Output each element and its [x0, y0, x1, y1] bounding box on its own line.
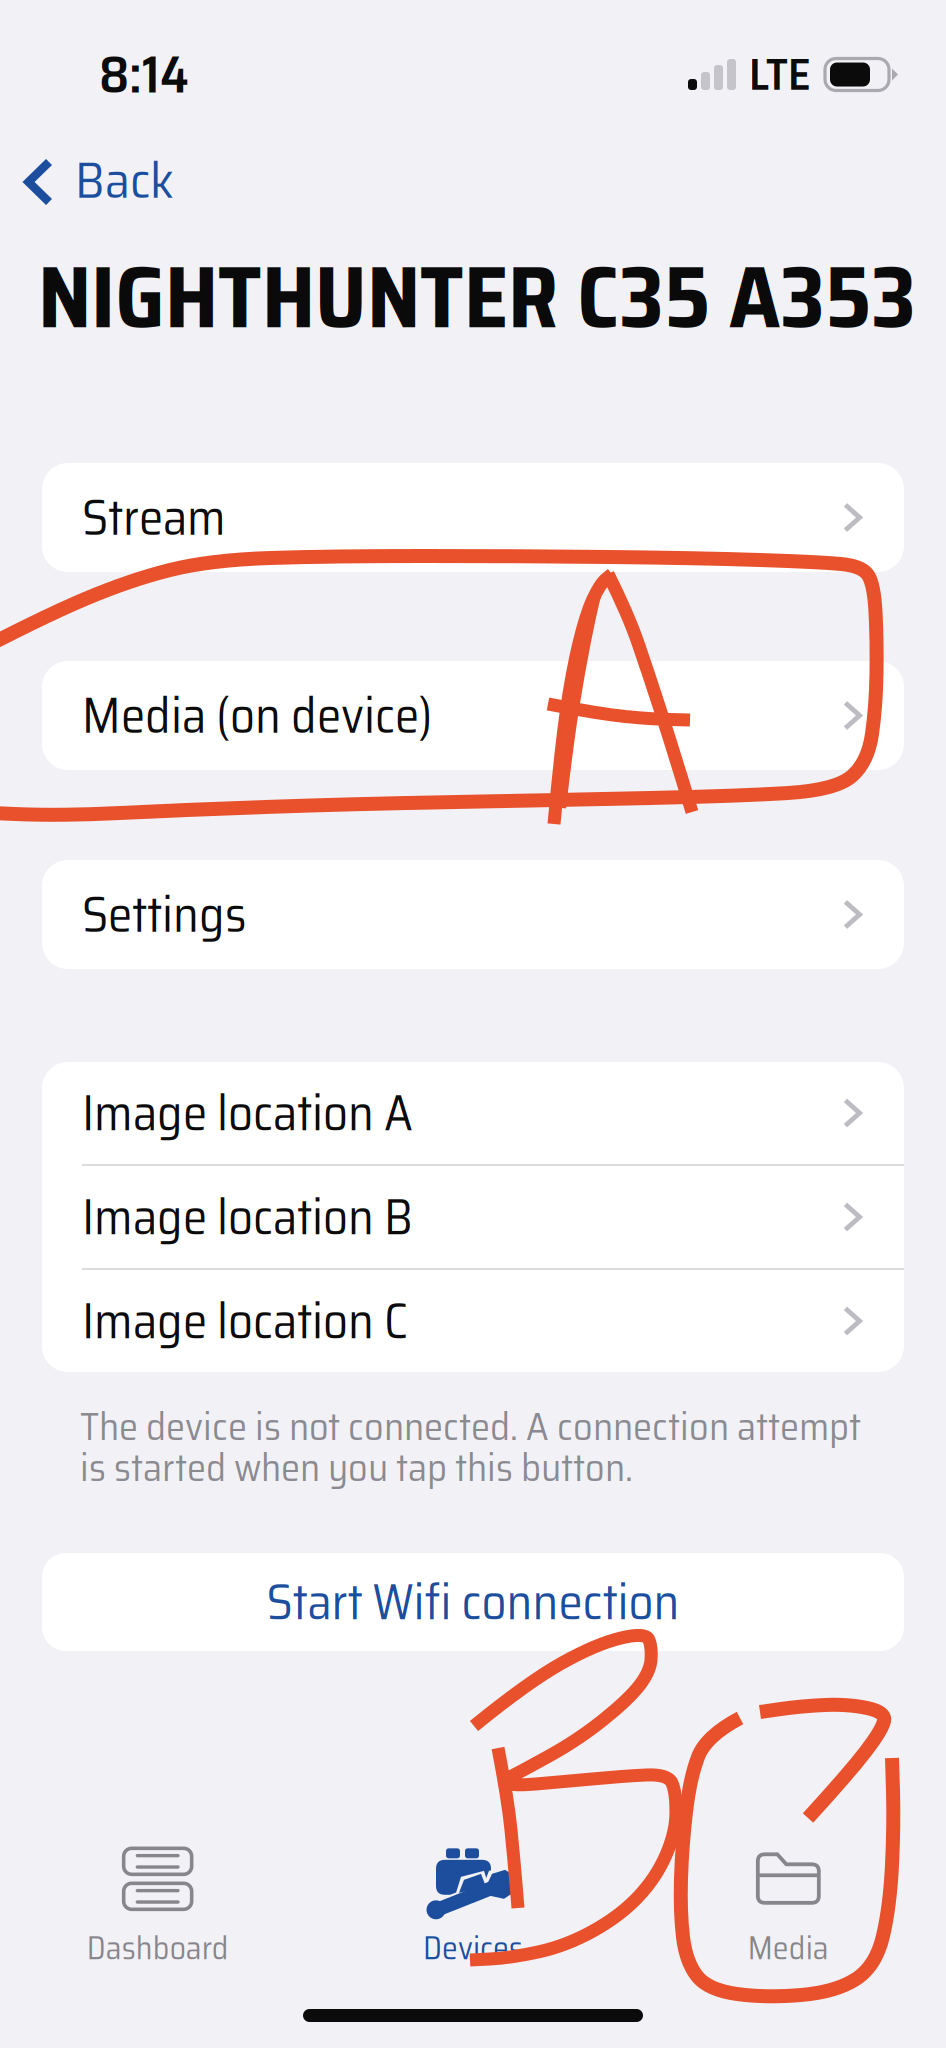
button[interactable]: Devices [315, 1851, 631, 1969]
button[interactable]: Dashboard [0, 1851, 315, 1969]
staticText: Image location C [82, 1282, 408, 1360]
staticText: Back [75, 140, 174, 220]
staticText: 8:14 [99, 34, 189, 115]
staticText: Stream [82, 479, 226, 556]
button[interactable]: Image location A [42, 1062, 904, 1164]
staticText: Dashboard [87, 1923, 229, 1973]
staticText: is started when you tap this button. [80, 1437, 633, 1498]
staticText: Media [748, 1923, 829, 1973]
staticText: NIGHTHUNTER C35 A353 [38, 229, 916, 365]
button[interactable]: Back [0, 149, 174, 245]
staticText: Devices [423, 1923, 523, 1973]
staticText: The device is not connected. A connectio… [80, 1396, 861, 1457]
button[interactable]: Media (on device) [42, 661, 904, 770]
staticText: LTE [749, 40, 811, 109]
button[interactable]: Start Wifi connection [42, 1553, 904, 1651]
button[interactable]: Image location B [42, 1166, 904, 1268]
button[interactable]: Settings [42, 860, 904, 969]
button[interactable]: Stream [42, 463, 904, 572]
staticText: Image location B [82, 1178, 413, 1256]
staticText: Settings [82, 876, 247, 953]
button[interactable]: Media [631, 1851, 946, 1969]
staticText: Image location A [82, 1074, 413, 1152]
button[interactable]: Image location C [42, 1270, 904, 1372]
staticText: Media (on device) [82, 677, 433, 754]
staticText: Start Wifi connection [266, 1563, 679, 1641]
